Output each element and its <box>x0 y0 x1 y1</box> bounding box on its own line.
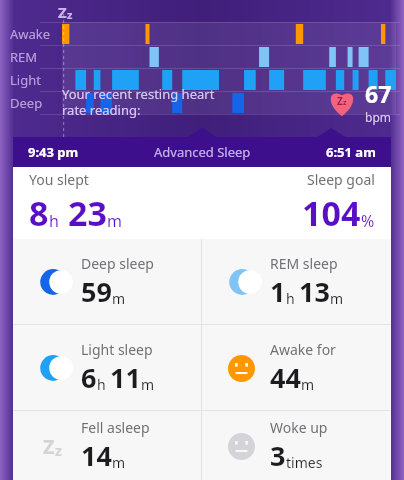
staticText: 104 <box>302 190 361 236</box>
other: Sleep stage <box>38 354 66 382</box>
button[interactable]: Sleep stage <box>13 239 201 324</box>
staticText: Woke up <box>270 418 328 437</box>
staticText: 67 <box>365 78 392 109</box>
staticText: 44 <box>270 359 301 396</box>
staticText: Light <box>10 71 41 89</box>
staticText: 14 <box>81 437 112 474</box>
staticText: m <box>330 289 344 308</box>
staticText: You slept <box>29 170 89 189</box>
button[interactable]: Awake <box>202 411 391 480</box>
staticText: 23 <box>68 190 107 236</box>
staticText: h <box>49 210 59 232</box>
staticText: 1 <box>270 273 286 310</box>
staticText: 9:43 pm <box>28 143 79 161</box>
staticText: 8 <box>29 190 49 236</box>
staticText: REM sleep <box>270 254 338 273</box>
staticText: h <box>286 289 295 308</box>
staticText: % <box>361 210 375 232</box>
button[interactable]: Fell asleep <box>13 411 201 480</box>
staticText: Deep sleep <box>81 254 154 273</box>
staticText: Awake for <box>270 340 336 359</box>
button[interactable]: Awake <box>202 325 391 410</box>
staticText: Z <box>43 433 55 460</box>
staticText: Advanced Sleep <box>154 143 251 161</box>
staticText: z <box>67 7 73 22</box>
other: Sleep stage <box>38 268 66 296</box>
staticText: m <box>141 375 155 394</box>
other: Sleep stage <box>227 268 255 296</box>
other: Awake <box>228 433 255 460</box>
staticText: 6 <box>81 359 97 396</box>
other: Fell asleep <box>43 433 62 460</box>
staticText: 3 <box>270 437 286 474</box>
button[interactable]: Sleep stage <box>13 325 201 410</box>
staticText: RHR <box>10 132 36 137</box>
staticText: times <box>286 453 323 472</box>
staticText: Fell asleep <box>81 418 150 437</box>
other: Awake <box>228 355 255 382</box>
staticText: Z <box>58 2 67 22</box>
staticText: m <box>112 289 126 308</box>
staticText: Your recent resting heart rate reading: <box>62 85 215 118</box>
staticText: z <box>343 98 347 108</box>
staticText: Deep <box>10 94 43 112</box>
staticText: Z <box>337 94 343 108</box>
staticText: z <box>55 441 62 460</box>
staticText: Awake <box>10 25 51 43</box>
button[interactable]: Sleep stage <box>202 239 391 324</box>
staticText: Light sleep <box>81 340 153 359</box>
staticText: Sleep goal <box>307 170 375 189</box>
staticText: bpm <box>365 109 391 125</box>
staticText: m <box>112 453 126 472</box>
staticText: 6:51 am <box>326 143 376 161</box>
staticText: REM <box>10 48 38 66</box>
staticText: 59 <box>81 273 112 310</box>
staticText: 11 <box>110 359 141 396</box>
staticText: h <box>97 375 106 394</box>
staticText: m <box>107 210 122 232</box>
staticText: m <box>301 375 315 394</box>
staticText: 13 <box>299 273 330 310</box>
